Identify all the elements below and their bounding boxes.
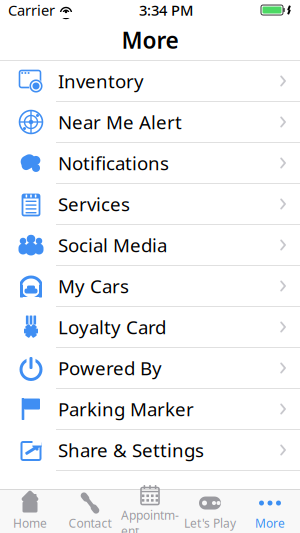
button[interactable]: More: [240, 490, 300, 533]
button[interactable]: Home: [0, 490, 60, 533]
button[interactable]: My Cars: [0, 266, 300, 307]
staticText: Loyalty Card: [58, 315, 166, 339]
button[interactable]: Inventory: [0, 61, 300, 102]
staticText: Carrier: [8, 0, 55, 20]
button[interactable]: Loyalty Card: [0, 307, 300, 348]
staticText: Let's Play: [184, 515, 236, 531]
staticText: More: [255, 515, 285, 531]
button[interactable]: Near Me Alert: [0, 102, 300, 143]
button[interactable]: Social Media: [0, 225, 300, 266]
staticText: Inventory: [58, 69, 144, 93]
staticText: Services: [58, 192, 130, 216]
staticText: Powered By: [58, 356, 162, 380]
button[interactable]: Parking Marker: [0, 389, 300, 430]
button[interactable]: Share & Settings: [0, 430, 300, 471]
staticText: Social Media: [58, 233, 167, 257]
button[interactable]: Notifications: [0, 143, 300, 184]
staticText: Home: [13, 515, 47, 531]
button[interactable]: Let's Play: [180, 490, 240, 533]
staticText: My Cars: [58, 274, 129, 298]
staticText: Notifications: [58, 151, 169, 175]
button[interactable]: Services: [0, 184, 300, 225]
staticText: 3:34 PM: [139, 0, 193, 20]
staticText: Near Me Alert: [58, 110, 182, 134]
button[interactable]: Appointment: [120, 490, 180, 533]
staticText: Contact: [68, 515, 111, 531]
button[interactable]: Contact: [60, 490, 120, 533]
staticText: Share & Settings: [58, 438, 204, 462]
staticText: Parking Marker: [58, 397, 194, 421]
button[interactable]: Powered By: [0, 348, 300, 389]
staticText: Appointment: [121, 507, 179, 533]
staticText: More: [121, 25, 178, 55]
